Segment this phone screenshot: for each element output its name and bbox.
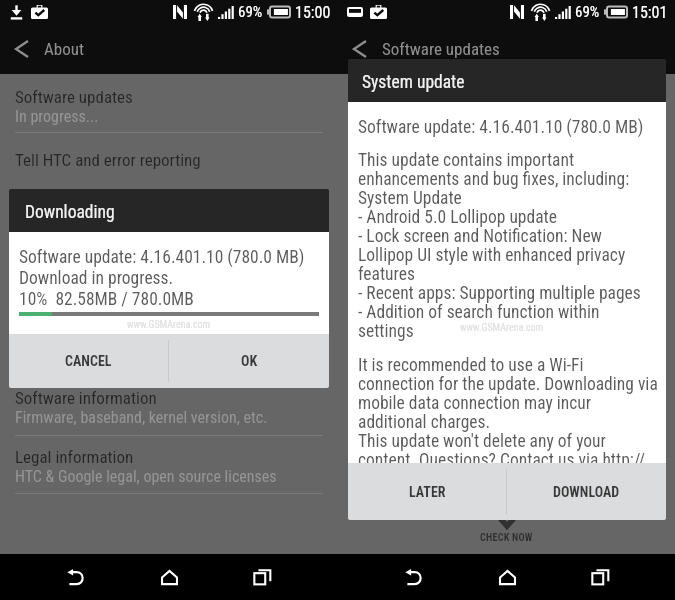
staticText: CHECK NOW: [480, 532, 533, 544]
button[interactable]: LATER: [348, 463, 506, 520]
button[interactable]: CHECK NOW: [480, 517, 533, 544]
staticText: Downloading: [25, 202, 115, 223]
button[interactable]: OK: [169, 334, 329, 388]
staticText: Software update: 4.16.401.10 (780.0 MB): [358, 117, 644, 138]
button[interactable]: Recent apps: [232, 554, 292, 600]
staticText: Software updates: [382, 39, 500, 59]
staticText: It is recommended to use a Wi-Fi connect…: [358, 355, 658, 463]
staticText: System update: [362, 72, 465, 93]
staticText: Tell HTC and error reporting: [15, 150, 201, 170]
staticText: 15:01: [632, 3, 668, 22]
button[interactable]: Software updates: [0, 84, 338, 131]
staticText: Software information: [15, 388, 157, 408]
staticText: About: [44, 39, 84, 59]
staticText: Download in progress.: [19, 268, 174, 289]
button[interactable]: Home: [139, 554, 199, 600]
staticText: Firmware, baseband, kernel version, etc.: [15, 408, 268, 427]
staticText: HTC & Google legal, open source licenses: [15, 467, 277, 486]
staticText: Software updates: [15, 87, 133, 107]
button[interactable]: Navigate up: [338, 27, 382, 71]
staticText: Legal information: [15, 447, 134, 467]
staticText: This update contains important enhanceme…: [358, 150, 641, 341]
staticText: OK: [241, 353, 258, 369]
staticText: www.GSMArena.com: [127, 319, 211, 331]
button[interactable]: DOWNLOAD: [507, 463, 666, 520]
button[interactable]: Software information: [0, 385, 338, 432]
staticText: 15:00: [295, 3, 331, 22]
staticText: www.GSMArena.com: [460, 322, 544, 334]
staticText: 69%: [575, 3, 600, 21]
button[interactable]: Back: [45, 554, 105, 600]
button[interactable]: CANCEL: [9, 334, 168, 388]
staticText: Software update: 4.16.401.10 (780.0 MB): [19, 247, 305, 268]
button[interactable]: Home: [477, 554, 537, 600]
staticText: In progress...: [15, 107, 99, 126]
button[interactable]: Navigate up: [0, 27, 44, 71]
staticText: DOWNLOAD: [553, 484, 620, 500]
button[interactable]: Back: [383, 554, 443, 600]
button[interactable]: Recent apps: [570, 554, 630, 600]
button[interactable]: Tell HTC and error reporting: [0, 147, 338, 175]
staticText: 10% 82.58MB / 780.0MB: [19, 289, 194, 310]
staticText: 69%: [238, 3, 263, 21]
staticText: LATER: [409, 484, 446, 500]
button[interactable]: Legal information: [0, 444, 338, 491]
staticText: CANCEL: [65, 353, 112, 369]
